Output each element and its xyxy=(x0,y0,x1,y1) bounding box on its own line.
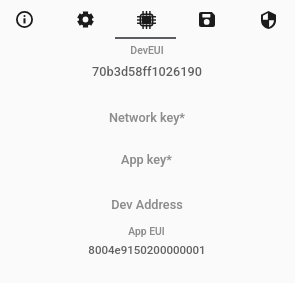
staticText: 8004e9150200000001 xyxy=(88,243,206,256)
button[interactable]: App EUI xyxy=(0,223,295,263)
staticText: Dev Address xyxy=(111,197,183,212)
button[interactable]: App key* xyxy=(0,146,295,174)
staticText: App EUI xyxy=(128,225,165,237)
button[interactable]: Network key* xyxy=(0,104,295,132)
button[interactable]: Save xyxy=(183,1,231,38)
button[interactable]: Dev Address xyxy=(0,191,295,219)
staticText: 70b3d58ff1026190 xyxy=(92,64,202,79)
button[interactable]: Settings xyxy=(61,1,109,38)
button[interactable]: Info xyxy=(0,1,48,38)
staticText: Network key* xyxy=(109,110,185,125)
staticText: App key* xyxy=(121,152,172,167)
button[interactable]: Security xyxy=(244,1,292,38)
button[interactable]: DevEUI xyxy=(0,42,295,84)
staticText: DevEUI xyxy=(130,44,164,56)
button[interactable]: Device memory xyxy=(122,1,170,38)
